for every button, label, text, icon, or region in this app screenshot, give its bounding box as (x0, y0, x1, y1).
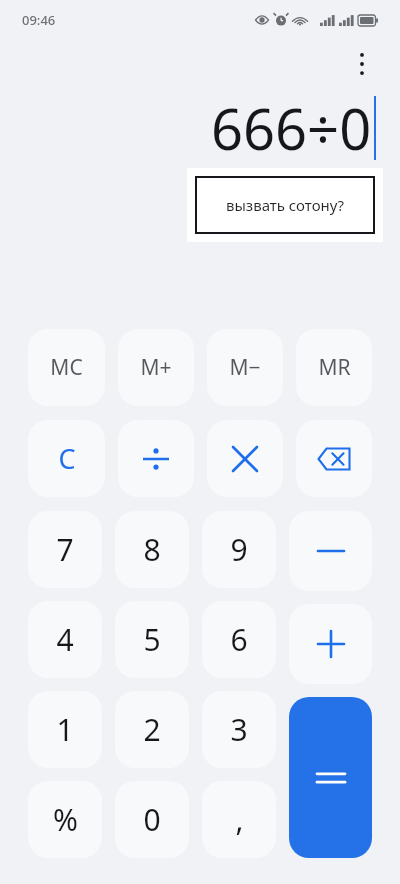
staticText: M+ (140, 353, 172, 382)
button[interactable]: 9 (202, 511, 276, 588)
button[interactable]: 0 (115, 781, 189, 858)
staticText: 666÷0 (211, 90, 372, 166)
button[interactable]: MC (28, 329, 105, 406)
button[interactable]: % (28, 781, 102, 858)
button[interactable]: 7 (28, 511, 102, 588)
button[interactable]: Plus (289, 604, 372, 684)
button[interactable]: 8 (115, 511, 189, 588)
staticText: M− (229, 353, 261, 382)
staticText: C (58, 440, 76, 477)
staticText: 2 (143, 709, 161, 750)
button[interactable]: Minus (289, 511, 372, 591)
staticText: 6 (230, 619, 248, 660)
staticText: 09:46 (22, 11, 56, 29)
button[interactable]: MR (296, 329, 372, 406)
staticText: MC (50, 353, 83, 382)
button[interactable]: Equals (289, 697, 372, 858)
button[interactable]: 2 (115, 691, 189, 768)
button[interactable]: 4 (28, 601, 102, 678)
button[interactable]: More options (342, 44, 382, 84)
button[interactable]: 3 (202, 691, 276, 768)
button[interactable]: вызвать сотону? (197, 178, 373, 232)
button[interactable]: M+ (118, 329, 194, 406)
staticText: 5 (143, 619, 161, 660)
staticText: % (53, 799, 78, 840)
button[interactable]: 5 (115, 601, 189, 678)
button[interactable]: , (202, 781, 276, 858)
staticText: вызвать сотону? (226, 195, 344, 215)
button[interactable]: 6 (202, 601, 276, 678)
button[interactable]: Multiply (207, 420, 283, 497)
staticText: 0 (143, 799, 161, 840)
staticText: 8 (143, 529, 161, 570)
staticText: MR (318, 353, 351, 382)
button[interactable]: Backspace (296, 420, 372, 497)
staticText: 1 (56, 709, 74, 750)
staticText: 4 (56, 619, 74, 660)
button[interactable]: C (28, 420, 105, 497)
staticText: 9 (230, 529, 248, 570)
staticText: 7 (56, 529, 74, 570)
staticText: , (235, 799, 244, 840)
staticText: 3 (230, 709, 248, 750)
button[interactable]: 1 (28, 691, 102, 768)
button[interactable]: M− (207, 329, 283, 406)
button[interactable]: Divide (118, 420, 194, 497)
